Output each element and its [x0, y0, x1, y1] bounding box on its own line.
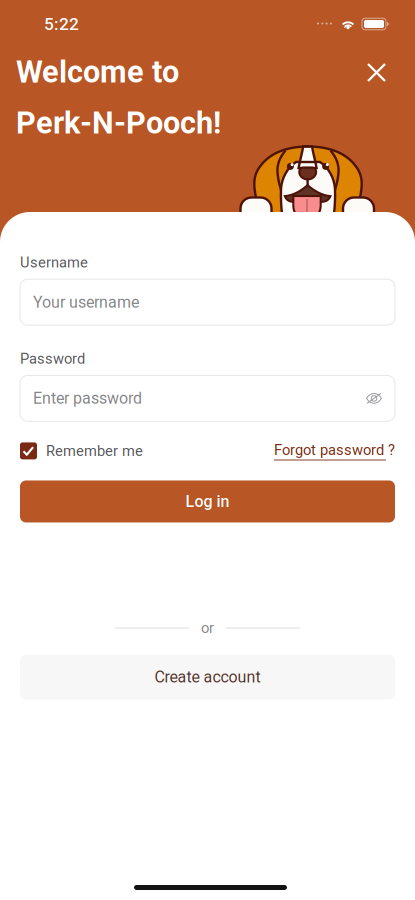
button[interactable]: Remember me — [20, 442, 143, 459]
staticText: 5:22 — [44, 14, 79, 34]
button[interactable]: Create account — [20, 655, 395, 700]
staticText: Username — [20, 254, 88, 271]
staticText: Forgot password ? — [274, 441, 395, 459]
staticText: Enter password — [33, 389, 142, 408]
staticText: Create account — [154, 668, 260, 687]
staticText: Perk-N-Pooch! — [16, 105, 221, 141]
staticText: Your username — [33, 293, 139, 312]
staticText: Remember me — [46, 442, 143, 459]
button[interactable]: Close — [356, 52, 397, 93]
staticText: or — [201, 619, 214, 637]
button[interactable]: Forgot password ? — [274, 441, 395, 460]
button[interactable]: Log in — [20, 480, 395, 522]
staticText: Log in — [185, 492, 229, 511]
staticText: Welcome to — [16, 54, 179, 90]
staticText: Password — [20, 350, 85, 367]
